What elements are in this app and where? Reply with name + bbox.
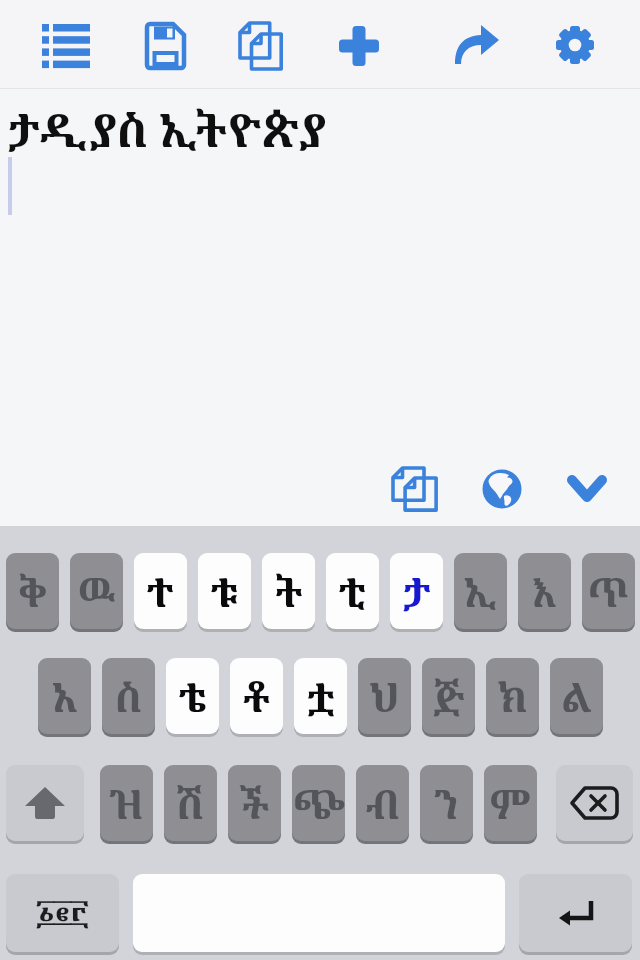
button[interactable]: ኢ [454,553,507,629]
staticText: ቶ [243,669,271,723]
button[interactable] [473,460,531,518]
button[interactable] [519,874,632,952]
button[interactable] [558,460,616,518]
staticText: ታ [403,564,431,618]
staticText: ቷ [307,669,335,723]
button[interactable]: ዉ [70,553,123,629]
staticText: ህ [369,669,400,723]
staticText: ት [275,564,303,618]
staticText: ቱ [211,564,238,618]
button[interactable] [385,460,443,518]
staticText: ቴ [179,669,207,723]
staticText: ስ [115,669,142,723]
button[interactable]: ጥ [582,553,635,629]
button[interactable]: ቴ [166,658,219,734]
staticText: ጥ [588,564,629,618]
button[interactable]: አ [38,658,91,734]
staticText: ጭ [293,776,345,830]
staticText: ን [434,776,459,830]
staticText: ብ [366,776,400,830]
button[interactable]: ጭ [292,765,345,841]
button[interactable]: ም [484,765,537,841]
button[interactable]: ስ [102,658,155,734]
button[interactable]: እ [518,553,571,629]
staticText: ክ [497,669,528,723]
button[interactable]: ቷ [294,658,347,734]
staticText: ል [561,669,592,723]
staticText: እ [532,564,557,618]
staticText: ፩፪፫ [36,893,89,934]
staticText: ሽ [176,776,205,830]
button[interactable]: ዝ [100,765,153,841]
staticText: ቅ [19,564,47,618]
staticText: ቲ [339,564,366,618]
button[interactable]: ቱ [198,553,251,629]
button[interactable] [543,14,607,78]
button[interactable]: ቅ [6,553,59,629]
staticText: ች [239,776,270,830]
button[interactable] [133,14,197,78]
button[interactable] [445,14,509,78]
button[interactable] [230,13,294,77]
button[interactable]: ን [420,765,473,841]
button[interactable]: ጅ [422,658,475,734]
button[interactable]: ቲ [326,553,379,629]
button[interactable]: ታ [390,553,443,629]
button[interactable]: ች [228,765,281,841]
staticText: ኢ [464,564,497,618]
staticText: ዝ [109,776,144,830]
button[interactable] [6,765,84,841]
staticText: ዉ [78,564,116,618]
button[interactable]: ክ [486,658,539,734]
button[interactable]: ሽ [164,765,217,841]
button[interactable]: ብ [356,765,409,841]
staticText: ታዲያስ ኢትዮጵያ [8,98,327,161]
button[interactable] [556,765,633,841]
button[interactable]: ቶ [230,658,283,734]
staticText: ተ [147,564,174,618]
button[interactable]: ል [550,658,603,734]
staticText: ጅ [433,669,465,723]
button[interactable]: ህ [358,658,411,734]
staticText: ም [490,776,531,830]
staticText: አ [52,669,78,723]
button[interactable]: ፩፪፫ [6,874,119,952]
button[interactable] [34,14,98,78]
button[interactable] [327,14,391,78]
button[interactable]: ተ [134,553,187,629]
button[interactable]: ት [262,553,315,629]
